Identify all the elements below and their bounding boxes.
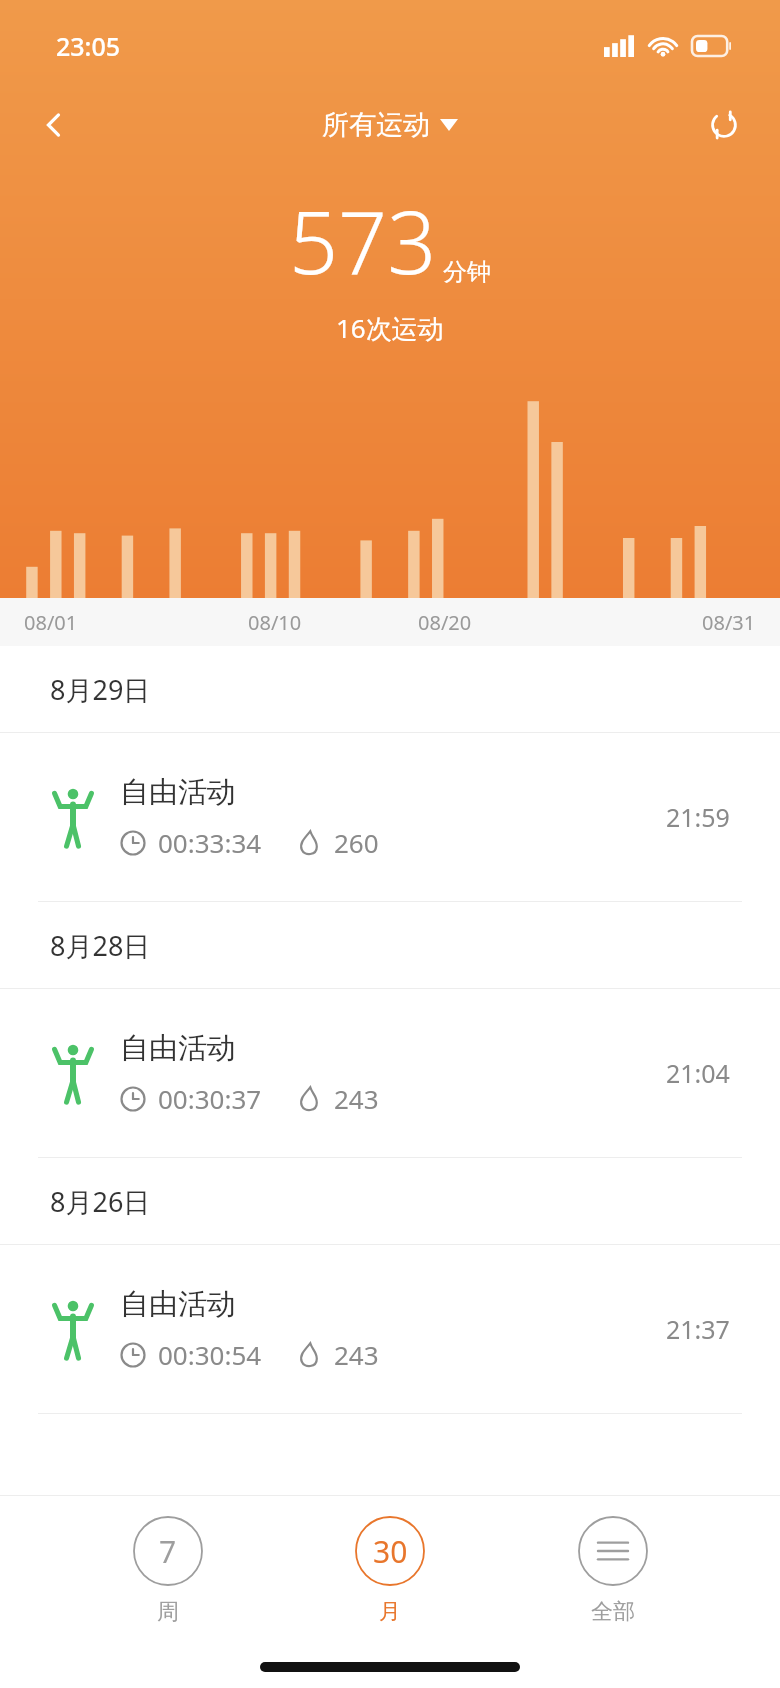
staticText: 自由活动 [120, 1286, 236, 1323]
staticText: 8月29日 [50, 671, 151, 708]
staticText: 所有运动 [322, 108, 430, 142]
staticText: 7 [159, 1531, 177, 1572]
staticText: 自由活动 [120, 1030, 236, 1067]
staticText: 243 [334, 1081, 379, 1116]
staticText: 573 [289, 182, 437, 299]
button[interactable]: Back [26, 97, 82, 153]
staticText: 21:37 [666, 1312, 730, 1346]
staticText: 周 [157, 1598, 179, 1626]
staticText: 243 [334, 1337, 379, 1372]
button[interactable]: 全部 [558, 1510, 668, 1632]
button[interactable]: 自由活动 [0, 1245, 780, 1413]
staticText: 08/20 [418, 609, 472, 636]
staticText: 21:59 [666, 800, 730, 834]
button[interactable]: 所有运动 [312, 102, 468, 148]
staticText: 16次运动 [336, 310, 444, 346]
staticText: 00:30:37 [158, 1081, 262, 1116]
staticText: 全部 [591, 1598, 635, 1626]
staticText: 260 [334, 825, 379, 860]
button[interactable]: 7 [113, 1510, 223, 1632]
button[interactable]: 30 [335, 1510, 445, 1632]
staticText: 30 [373, 1531, 408, 1572]
staticText: 08/31 [702, 609, 756, 636]
staticText: 08/01 [24, 609, 78, 636]
staticText: 00:33:34 [158, 825, 262, 860]
staticText: 自由活动 [120, 774, 236, 811]
button[interactable]: 自由活动 [0, 733, 780, 901]
staticText: 分钟 [443, 257, 491, 287]
staticText: 08/10 [248, 609, 302, 636]
staticText: 00:30:54 [158, 1337, 262, 1372]
staticText: 8月28日 [50, 927, 151, 964]
button[interactable]: 自由活动 [0, 989, 780, 1157]
staticText: 21:04 [666, 1056, 730, 1090]
staticText: 月 [379, 1598, 401, 1626]
staticText: 8月26日 [50, 1183, 151, 1220]
staticText: 23:05 [56, 29, 121, 63]
button[interactable]: Refresh [696, 97, 752, 153]
